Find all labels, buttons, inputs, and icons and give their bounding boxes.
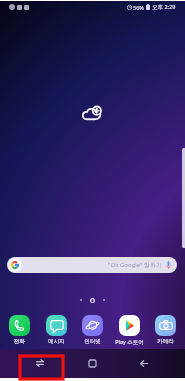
button[interactable]: 메시지 (39, 315, 74, 345)
staticText: 전화 (14, 338, 25, 345)
button[interactable]: 전화 (2, 315, 37, 345)
button[interactable]: "Ok Google" 말하기 (7, 257, 177, 273)
staticText: 56% (133, 4, 144, 11)
button[interactable]: Add weather widget (80, 104, 103, 120)
button[interactable]: Back (126, 350, 162, 376)
button[interactable]: Home (74, 350, 110, 376)
staticText: 카메라 (157, 338, 174, 345)
staticText: 메시지 (48, 338, 65, 345)
button[interactable]: Play 스토어 (112, 315, 147, 346)
button[interactable]: 카메라 (148, 315, 183, 345)
staticText: Play 스토어 (115, 338, 144, 346)
button[interactable]: 인터넷 (75, 315, 110, 345)
button[interactable]: Recent apps (22, 350, 58, 376)
staticText: "Ok Google" 말하기 (108, 261, 163, 269)
staticText: 인터넷 (84, 338, 101, 345)
staticText: 오후 2:29 (152, 3, 176, 11)
